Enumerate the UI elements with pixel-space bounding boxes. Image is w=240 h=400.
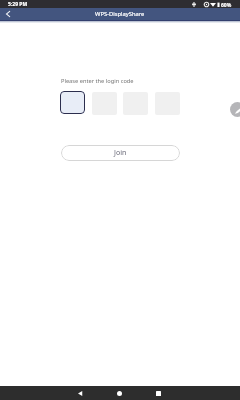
- button[interactable]: Back: [70, 386, 91, 400]
- button[interactable]: Code digit 1: [60, 91, 85, 114]
- staticText: Join: [114, 148, 127, 158]
- staticText: Please enter the login code: [61, 77, 134, 85]
- staticText: WPS-DisplayShare: [95, 10, 145, 18]
- button[interactable]: Recents: [148, 386, 169, 400]
- button[interactable]: Join: [61, 145, 180, 161]
- staticText: 60%: [221, 2, 232, 9]
- button[interactable]: Accessibility shortcut: [230, 102, 240, 117]
- button[interactable]: Back: [0, 8, 16, 20]
- staticText: 5:29 PM: [8, 1, 28, 8]
- button[interactable]: Home: [109, 386, 130, 400]
